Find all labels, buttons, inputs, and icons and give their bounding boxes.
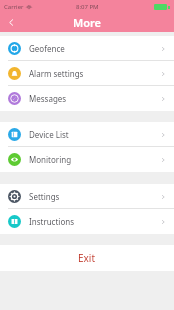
button[interactable]: Settings (0, 184, 174, 209)
staticText: Exit (78, 251, 96, 265)
staticText: Geofence (29, 43, 65, 54)
staticText: Instructions (29, 216, 75, 227)
staticText: Device List (29, 129, 69, 140)
button[interactable]: Geofence (0, 36, 174, 61)
button[interactable]: Messages (0, 86, 174, 111)
button[interactable]: Alarm settings (0, 61, 174, 86)
staticText: Settings (29, 191, 60, 202)
staticText: More (73, 15, 101, 30)
button[interactable]: Device List (0, 122, 174, 147)
staticText: Messages (29, 93, 67, 104)
button[interactable]: Instructions (0, 209, 174, 234)
staticText: Monitoring (29, 154, 72, 165)
button[interactable]: Exit (0, 245, 174, 271)
staticText: 8:07 PM (76, 3, 99, 11)
staticText: Carrier (4, 3, 24, 11)
button[interactable]: Back (0, 13, 22, 32)
button[interactable]: Monitoring (0, 147, 174, 172)
staticText: Alarm settings (29, 68, 84, 79)
